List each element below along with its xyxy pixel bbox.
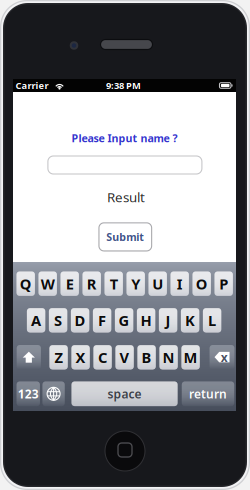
staticText: L: [208, 311, 216, 330]
button[interactable]: Submit: [99, 223, 152, 251]
button[interactable]: O: [192, 271, 211, 296]
staticText: K: [185, 311, 195, 330]
staticText: G: [119, 311, 130, 330]
staticText: N: [163, 348, 175, 367]
staticText: C: [98, 348, 107, 367]
button[interactable]: U: [148, 271, 167, 296]
button[interactable]: Q: [16, 271, 35, 296]
button[interactable]: K: [181, 308, 199, 332]
staticText: W: [41, 274, 55, 293]
button[interactable]: Y: [126, 271, 145, 296]
staticText: J: [166, 311, 171, 330]
button[interactable]: X: [71, 345, 90, 369]
staticText: U: [152, 274, 163, 293]
button[interactable]: B: [137, 345, 156, 369]
button[interactable]: Next keyboard: [42, 381, 65, 406]
staticText: Carrier: [15, 79, 48, 92]
staticText: H: [141, 311, 152, 330]
button[interactable]: M: [181, 345, 200, 369]
button[interactable]: C: [93, 345, 112, 369]
staticText: T: [110, 274, 118, 293]
staticText: Q: [20, 274, 32, 293]
staticText: return: [189, 386, 227, 402]
button[interactable]: L: [203, 308, 221, 332]
staticText: Submit: [106, 230, 144, 244]
button[interactable]: space: [71, 381, 178, 406]
staticText: A: [31, 311, 41, 330]
staticText: x: [221, 349, 228, 365]
button[interactable]: F: [93, 308, 111, 332]
staticText: Z: [55, 348, 63, 367]
button[interactable]: T: [104, 271, 123, 296]
staticText: V: [120, 348, 130, 367]
button[interactable]: N: [159, 345, 178, 369]
button[interactable]: S: [49, 308, 67, 332]
staticText: B: [142, 348, 152, 367]
staticText: Please Input name ?: [71, 131, 177, 145]
staticText: P: [219, 274, 228, 293]
button[interactable]: 123: [17, 381, 40, 406]
staticText: Y: [131, 274, 140, 293]
button[interactable]: P: [214, 271, 233, 296]
staticText: M: [184, 348, 198, 367]
staticText: F: [98, 311, 106, 330]
staticText: 123: [18, 386, 39, 402]
button[interactable]: A: [27, 308, 45, 332]
staticText: space: [107, 386, 141, 402]
staticText: Result: [107, 188, 145, 206]
button[interactable]: Z: [49, 345, 68, 369]
staticText: O: [196, 274, 208, 293]
staticText: S: [54, 311, 62, 330]
button[interactable]: Shift: [17, 345, 41, 370]
button[interactable]: Delete: [210, 345, 234, 370]
button[interactable]: G: [115, 308, 133, 332]
button[interactable]: I: [170, 271, 189, 296]
button[interactable]: E: [60, 271, 79, 296]
staticText: 9:38 PM: [106, 79, 141, 92]
staticText: E: [66, 274, 74, 293]
button[interactable]: W: [38, 271, 57, 296]
staticText: X: [76, 348, 86, 367]
staticText: I: [177, 274, 183, 293]
button[interactable]: J: [159, 308, 177, 332]
button[interactable]: R: [82, 271, 101, 296]
button[interactable]: V: [115, 345, 134, 369]
button[interactable]: return: [182, 381, 234, 406]
staticText: R: [87, 274, 97, 293]
button[interactable]: H: [137, 308, 155, 332]
staticText: D: [75, 311, 86, 330]
button[interactable]: D: [71, 308, 89, 332]
